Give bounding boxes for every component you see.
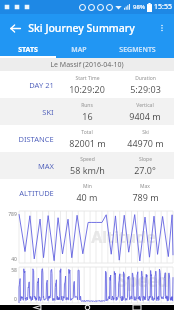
staticText: 44970 m	[127, 137, 164, 149]
staticText: DAY 21	[29, 80, 54, 90]
staticText: 0	[14, 296, 17, 303]
button[interactable]: Back	[24, 305, 50, 310]
staticText: Speed	[80, 156, 95, 163]
button[interactable]: DAY 21	[0, 71, 174, 98]
staticText: 27.0°	[134, 164, 156, 176]
staticText: 16	[82, 110, 93, 122]
staticText: Altitude	[91, 226, 156, 248]
staticText: 5:29:03	[130, 83, 161, 95]
staticText: Duration	[135, 75, 156, 82]
staticText: DISTANCE	[18, 134, 54, 144]
staticText: 82001 m	[69, 137, 106, 149]
staticText: Speed	[117, 269, 169, 292]
button[interactable]: MAP	[56, 42, 101, 58]
staticText: ALTITUDE	[19, 188, 54, 198]
staticText: 15:55	[154, 2, 172, 12]
staticText: SKI	[42, 107, 54, 117]
staticText: Total	[81, 129, 93, 136]
staticText: 40	[11, 256, 17, 263]
staticText: SEGMENTS	[119, 45, 156, 55]
button[interactable]: 789	[0, 209, 174, 265]
staticText: MAX	[38, 161, 54, 171]
staticText: 10:29:20	[69, 83, 105, 95]
button[interactable]: ALTITUDE	[0, 179, 174, 206]
button[interactable]: More options	[154, 20, 170, 36]
button[interactable]: Recent apps	[124, 305, 150, 310]
button[interactable]: Home	[74, 305, 100, 310]
staticText: 789	[8, 211, 17, 218]
button[interactable]: STATS	[0, 42, 56, 58]
staticText: Runs	[81, 102, 93, 109]
button[interactable]: SEGMENTS	[101, 42, 174, 58]
staticText: 789 m	[132, 191, 159, 203]
staticText: 9404 m	[129, 110, 161, 122]
staticText: Ski Journey Summary	[28, 21, 135, 35]
staticText: Max	[140, 183, 150, 190]
staticText: STATS	[18, 45, 38, 55]
staticText: 98%	[133, 3, 145, 11]
button[interactable]: 58	[0, 265, 174, 305]
button[interactable]: SKI	[0, 98, 174, 125]
button[interactable]: Back	[6, 19, 24, 37]
staticText: 58 km/h	[70, 164, 105, 176]
staticText: Start Time	[75, 75, 100, 82]
staticText: Min	[83, 183, 92, 190]
staticText: Vertical	[136, 102, 154, 109]
staticText: 58	[11, 267, 17, 274]
staticText: Slope	[139, 156, 152, 163]
button[interactable]: MAX	[0, 152, 174, 179]
button[interactable]: DISTANCE	[0, 125, 174, 152]
staticText: Ski	[142, 129, 149, 136]
staticText: MAP	[71, 45, 87, 55]
staticText: Le Massif (2016-04-10)	[50, 60, 124, 70]
staticText: 40 m	[76, 191, 98, 203]
